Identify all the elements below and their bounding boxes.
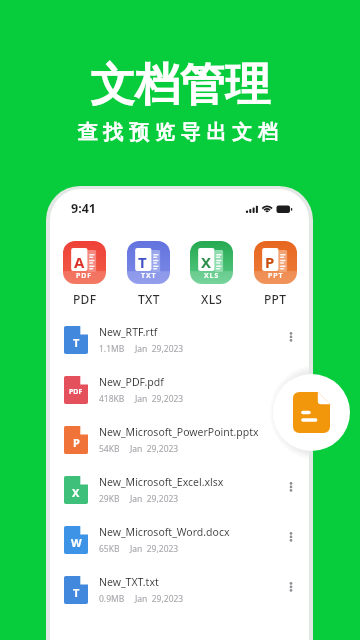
staticText: Jan 29,2023: [130, 543, 179, 555]
button[interactable]: W: [50, 515, 309, 565]
staticText: T: [73, 335, 80, 350]
staticText: New_Microsoft_Word.docx: [99, 525, 230, 539]
staticText: Jan 29,2023: [135, 593, 184, 605]
button[interactable]: X: [186, 239, 237, 309]
button[interactable]: More options: [279, 528, 303, 552]
staticText: Jan 29,2023: [135, 393, 184, 405]
staticText: New_Microsoft_Excel.xlsx: [99, 475, 224, 489]
button[interactable]: T: [123, 239, 174, 309]
staticText: 54KB: [99, 443, 120, 455]
staticText: New_PDF.pdf: [99, 375, 164, 389]
button[interactable]: PDF: [50, 365, 309, 415]
staticText: 0.9MB: [99, 593, 125, 605]
button[interactable]: More options: [279, 378, 303, 402]
button[interactable]: More options: [279, 478, 303, 502]
staticText: X: [72, 485, 80, 500]
staticText: 查找预览导出文档: [77, 120, 284, 145]
staticText: W: [71, 535, 82, 550]
staticText: XLS: [201, 291, 223, 307]
staticText: PPT: [268, 271, 284, 281]
staticText: X: [201, 252, 212, 272]
staticText: PDF: [73, 291, 97, 307]
staticText: 文档管理: [90, 57, 270, 114]
staticText: TXT: [138, 291, 160, 307]
staticText: A: [74, 252, 85, 272]
staticText: 65KB: [99, 543, 120, 555]
staticText: P: [73, 435, 80, 450]
staticText: 418KB: [99, 393, 125, 405]
button[interactable]: More options: [279, 428, 303, 452]
staticText: PDF: [69, 387, 83, 397]
button[interactable]: P: [250, 239, 301, 309]
staticText: 1.1MB: [99, 343, 125, 355]
staticText: P: [265, 252, 275, 272]
staticText: 9:41: [71, 200, 96, 217]
staticText: PDF: [76, 271, 93, 281]
button[interactable]: X: [50, 465, 309, 515]
staticText: T: [138, 252, 147, 272]
button[interactable]: A: [59, 239, 110, 309]
button[interactable]: More options: [279, 578, 303, 602]
staticText: PPT: [264, 291, 287, 307]
staticText: Jan 29,2023: [130, 443, 179, 455]
staticText: 29KB: [99, 493, 120, 505]
button[interactable]: T: [50, 315, 309, 365]
button[interactable]: T: [50, 565, 309, 615]
staticText: TXT: [141, 271, 157, 281]
staticText: New_TXT.txt: [99, 575, 159, 589]
staticText: Jan 29,2023: [130, 493, 179, 505]
button[interactable]: New document: [273, 374, 350, 451]
staticText: New_RTF.rtf: [99, 325, 158, 339]
button[interactable]: More options: [279, 328, 303, 352]
staticText: New_Microsoft_PowerPoint.pptx: [99, 425, 259, 439]
staticText: Jan 29,2023: [135, 343, 184, 355]
button[interactable]: P: [50, 415, 309, 465]
staticText: XLS: [204, 271, 220, 281]
staticText: T: [73, 585, 80, 600]
